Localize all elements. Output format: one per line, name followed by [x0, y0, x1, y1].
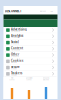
staticText: 8 requests — [11, 43, 19, 45]
staticText: Analytics — [11, 34, 23, 37]
staticText: blocked — [11, 61, 17, 63]
staticText: Time — [50, 10, 53, 12]
staticText: Cookies — [11, 59, 23, 62]
staticText: blocked — [43, 79, 49, 81]
staticText: Content — [11, 46, 23, 50]
staticText: enabled — [11, 68, 17, 70]
staticText: saved — [26, 79, 31, 81]
staticText: 3 requests — [11, 55, 19, 57]
staticText: DISCONNECT — [5, 9, 22, 13]
button[interactable]: Social — [4, 39, 56, 46]
button[interactable]: Secure — [4, 64, 56, 71]
button[interactable]: Advertising — [4, 27, 56, 33]
staticText: Time — [10, 77, 13, 79]
button[interactable]: Trackers — [4, 71, 56, 77]
staticText: Social — [11, 40, 19, 44]
staticText: 12 requests — [11, 36, 20, 38]
button[interactable]: Other — [4, 52, 56, 58]
staticText: Bandwidth — [25, 77, 32, 79]
staticText: Secure — [11, 65, 20, 69]
staticText: 16 requests — [11, 49, 20, 51]
staticText: 24 requests — [11, 30, 20, 32]
button[interactable]: Cookies — [4, 58, 56, 64]
staticText: Blocked — [40, 10, 46, 12]
staticText: Other — [11, 53, 19, 56]
staticText: visualize — [11, 74, 17, 76]
staticText: saved — [9, 79, 14, 81]
staticText: Trackers — [11, 71, 22, 75]
button[interactable]: Analytics — [4, 33, 56, 39]
staticText: Advertising — [11, 28, 27, 31]
button[interactable]: Content — [4, 46, 56, 52]
staticText: Requests — [42, 77, 49, 79]
